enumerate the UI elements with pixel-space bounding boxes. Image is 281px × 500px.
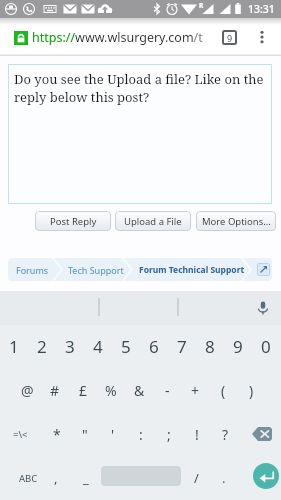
staticText: - [165,381,170,400]
button[interactable]: 4 [84,325,112,368]
staticText: * [53,425,61,444]
button[interactable]: . [210,456,238,500]
staticText: 6 [149,335,159,358]
staticText: @ [21,381,34,400]
staticText: ( [221,381,226,400]
button[interactable]: 2 [28,325,56,368]
button[interactable]: More Options... [196,211,276,231]
staticText: % [105,381,117,400]
button[interactable]: 1 [0,325,28,368]
staticText: =\< [13,428,28,441]
staticText: & [134,381,145,400]
staticText: 4 [93,335,103,358]
button[interactable]: 9 [224,325,252,368]
button[interactable]: ) [237,368,265,412]
button[interactable]: Tabs [222,30,237,45]
staticText: # [50,381,60,400]
button[interactable]: ? [211,412,239,456]
staticText: 5 [121,335,131,358]
staticText: " [82,425,88,444]
staticText: 2 [37,335,47,358]
button[interactable]: , [42,456,70,500]
button[interactable]: Forums [16,258,49,281]
button[interactable]: More options [250,25,274,49]
button[interactable]: - [153,368,181,412]
button[interactable]: ABC [0,456,56,500]
button[interactable]: £ [69,368,97,412]
staticText: 7 [177,335,187,358]
button[interactable]: : [127,412,155,456]
button[interactable]: Tech Support [68,258,124,281]
staticText: 13:31 [248,2,275,16]
button[interactable]: Forum Technical Support [139,258,245,281]
button[interactable]: % [97,368,125,412]
staticText: Forums [16,264,49,276]
button[interactable]: Upload a File [115,211,191,231]
staticText: Upload a File [124,215,182,228]
button[interactable]: 7 [168,325,196,368]
staticText: Tech Support [68,264,124,276]
button[interactable]: @ [13,368,41,412]
button[interactable]: # [41,368,69,412]
button[interactable]: 8 [196,325,224,368]
staticText: Post Reply [50,215,97,228]
staticText: . [222,469,226,487]
button[interactable]: ( [209,368,237,412]
button[interactable]: ; [155,412,183,456]
staticText: : [139,425,143,444]
button[interactable]: Backspace [243,412,281,456]
button[interactable]: 6 [140,325,168,368]
button[interactable]: ' [99,412,127,456]
staticText: ' [111,425,115,444]
button[interactable]: Do you see the Upload a file? Like on th… [8,64,272,204]
staticText: ! [195,425,199,444]
staticText: 9 [227,32,233,44]
button[interactable]: 3 [56,325,84,368]
button[interactable]: * [43,412,71,456]
button[interactable]: 5 [112,325,140,368]
button[interactable]: _ [72,456,100,500]
staticText: 8 [205,335,215,358]
staticText: ) [249,381,254,400]
staticText: https://www.wlsurgery.com/t [32,29,203,46]
staticText: 0 [261,335,271,358]
button[interactable]: ! [183,412,211,456]
button[interactable]: Open in new window [257,263,270,276]
button[interactable]: Voice input [253,298,273,318]
staticText: + [191,381,200,400]
staticText: ABC [19,472,38,485]
staticText: Do you see the Upload a file? Like on th… [14,70,264,106]
button[interactable]: Post Reply [35,211,111,231]
staticText: £ [79,381,88,400]
staticText: _ [83,469,89,487]
button[interactable]: & [125,368,153,412]
button[interactable]: 0 [252,325,280,368]
staticText: 3 [65,335,75,358]
staticText: 9 [233,335,243,358]
button[interactable]: =\< [6,412,34,456]
button[interactable]: + [181,368,209,412]
button[interactable]: https://www.wlsurgery.com/t [0,18,281,56]
staticText: / [194,469,199,487]
button[interactable]: Enter [253,463,279,489]
staticText: R [199,1,204,10]
staticText: 1 [9,335,19,358]
staticText: ? [222,425,229,444]
staticText: ; [167,425,171,444]
button[interactable]: " [71,412,99,456]
staticText: , [54,469,58,487]
button[interactable]: / [182,456,210,500]
staticText: Forum Technical Support [139,264,245,276]
staticText: More Options... [202,215,271,228]
